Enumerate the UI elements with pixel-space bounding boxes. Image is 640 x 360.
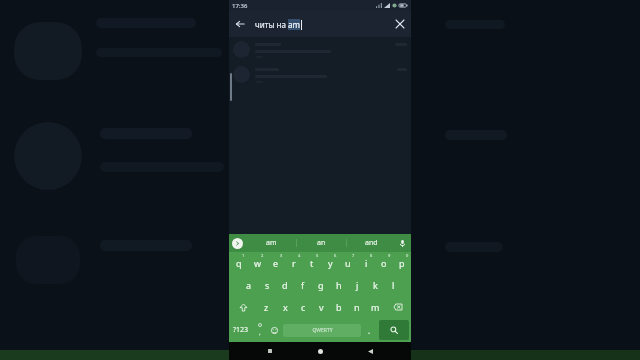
button[interactable]: Clear search bbox=[389, 13, 411, 35]
button[interactable]: Voice input bbox=[396, 237, 408, 249]
button[interactable]: q bbox=[229, 252, 248, 274]
button[interactable]: c bbox=[294, 296, 312, 318]
button[interactable] bbox=[233, 66, 407, 83]
button[interactable]: w bbox=[248, 252, 267, 274]
button[interactable]: f bbox=[294, 274, 312, 296]
staticText: s bbox=[265, 279, 270, 291]
staticText: 4 bbox=[298, 253, 301, 258]
staticText: читы на bbox=[255, 19, 288, 30]
staticText: o bbox=[381, 257, 387, 269]
staticText: d bbox=[282, 279, 288, 291]
staticText: 6 bbox=[334, 253, 337, 258]
button[interactable]: b bbox=[330, 296, 348, 318]
button[interactable]: . bbox=[362, 318, 377, 342]
staticText: l bbox=[392, 279, 395, 291]
staticText: , bbox=[259, 329, 261, 337]
staticText: a bbox=[246, 279, 252, 291]
button[interactable]: m bbox=[366, 296, 384, 318]
button[interactable]: l bbox=[384, 274, 402, 296]
staticText: j bbox=[356, 279, 359, 291]
staticText: q bbox=[236, 257, 242, 269]
button[interactable] bbox=[233, 41, 407, 58]
staticText: w bbox=[254, 257, 262, 269]
staticText: i bbox=[365, 257, 368, 269]
staticText: . bbox=[368, 325, 371, 336]
staticText: an bbox=[317, 238, 326, 248]
button[interactable]: Search bbox=[379, 320, 409, 340]
staticText: c bbox=[301, 301, 306, 313]
button[interactable]: u bbox=[339, 252, 357, 274]
staticText: g bbox=[318, 279, 324, 291]
button[interactable]: an bbox=[297, 234, 346, 252]
staticText: h bbox=[336, 279, 342, 291]
button[interactable]: p bbox=[393, 252, 411, 274]
button[interactable]: j bbox=[348, 274, 366, 296]
staticText: 9 bbox=[388, 253, 391, 258]
staticText: m bbox=[371, 301, 380, 313]
staticText: t bbox=[310, 257, 314, 269]
button[interactable]: y bbox=[321, 252, 339, 274]
button[interactable]: Back bbox=[361, 342, 379, 360]
button[interactable]: Backspace bbox=[384, 296, 411, 318]
staticText: 17:36 bbox=[232, 2, 248, 10]
button[interactable]: n bbox=[348, 296, 366, 318]
button[interactable]: Emoji bbox=[267, 318, 282, 342]
staticText: 8 bbox=[370, 253, 373, 258]
staticText: ?123 bbox=[233, 325, 249, 335]
button[interactable]: Settings bbox=[252, 318, 267, 342]
staticText: p bbox=[399, 257, 405, 269]
button[interactable]: d bbox=[276, 274, 294, 296]
button[interactable]: g bbox=[312, 274, 330, 296]
button[interactable]: x bbox=[276, 296, 294, 318]
button[interactable]: e bbox=[267, 252, 285, 274]
button[interactable]: Recents bbox=[261, 342, 279, 360]
button[interactable]: o bbox=[375, 252, 393, 274]
button[interactable]: r bbox=[285, 252, 303, 274]
staticText: r bbox=[292, 257, 296, 269]
staticText: QWERTY bbox=[312, 327, 333, 334]
staticText: 2 bbox=[261, 253, 264, 258]
staticText: b bbox=[336, 301, 342, 313]
staticText: x bbox=[283, 301, 288, 313]
button[interactable]: Home bbox=[311, 342, 329, 360]
button[interactable]: s bbox=[258, 274, 276, 296]
staticText: u bbox=[345, 257, 351, 269]
button[interactable]: k bbox=[366, 274, 384, 296]
staticText: v bbox=[319, 301, 324, 313]
button[interactable]: and bbox=[347, 234, 396, 252]
staticText: 3 bbox=[280, 253, 283, 258]
button[interactable]: h bbox=[330, 274, 348, 296]
button[interactable]: a bbox=[239, 274, 258, 296]
staticText: f bbox=[301, 279, 305, 291]
button[interactable]: z bbox=[257, 296, 276, 318]
staticText: 5 bbox=[316, 253, 319, 258]
staticText: and bbox=[365, 238, 378, 248]
button[interactable]: i bbox=[357, 252, 375, 274]
staticText: e bbox=[273, 257, 279, 269]
button[interactable]: v bbox=[312, 296, 330, 318]
staticText: am bbox=[266, 238, 277, 248]
button[interactable]: am bbox=[246, 234, 296, 252]
button[interactable]: QWERTY bbox=[283, 324, 361, 337]
button[interactable]: More suggestions bbox=[232, 238, 243, 249]
staticText: y bbox=[328, 257, 333, 269]
button[interactable]: Shift bbox=[229, 296, 257, 318]
staticText: k bbox=[373, 279, 378, 291]
staticText: 0 bbox=[406, 253, 409, 258]
button[interactable]: ?123 bbox=[229, 318, 252, 342]
staticText: 1 bbox=[242, 253, 245, 258]
staticText: n bbox=[354, 301, 360, 313]
staticText: z bbox=[264, 301, 269, 313]
button[interactable]: t bbox=[303, 252, 321, 274]
staticText: am bbox=[288, 19, 300, 30]
staticText: 7 bbox=[352, 253, 355, 258]
button[interactable]: Back bbox=[229, 13, 251, 35]
